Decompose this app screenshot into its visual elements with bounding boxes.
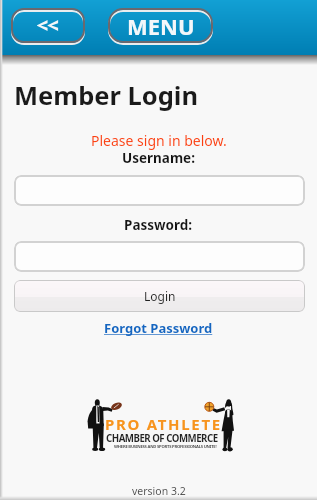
staticText: Member Login <box>14 78 199 113</box>
staticText: PRO ATHLETE <box>105 414 222 434</box>
button[interactable]: MENU <box>108 8 213 43</box>
staticText: MENU <box>127 11 195 41</box>
staticText: CHAMBER OF COMMERCE <box>106 432 218 445</box>
staticText: WHERE BUSINESS AND SPORTS PROFESSIONALS … <box>114 444 217 450</box>
staticText: Password: <box>124 216 193 234</box>
staticText: Username: <box>122 149 195 167</box>
button[interactable] <box>14 241 305 272</box>
button[interactable]: Forgot Password <box>104 319 213 337</box>
staticText: version 3.2 <box>132 484 186 498</box>
staticText: Login <box>144 288 176 304</box>
button[interactable]: Login <box>14 280 305 312</box>
button[interactable]: Back <box>11 8 85 43</box>
button[interactable] <box>14 175 305 206</box>
staticText: Please sign in below. <box>91 131 227 150</box>
